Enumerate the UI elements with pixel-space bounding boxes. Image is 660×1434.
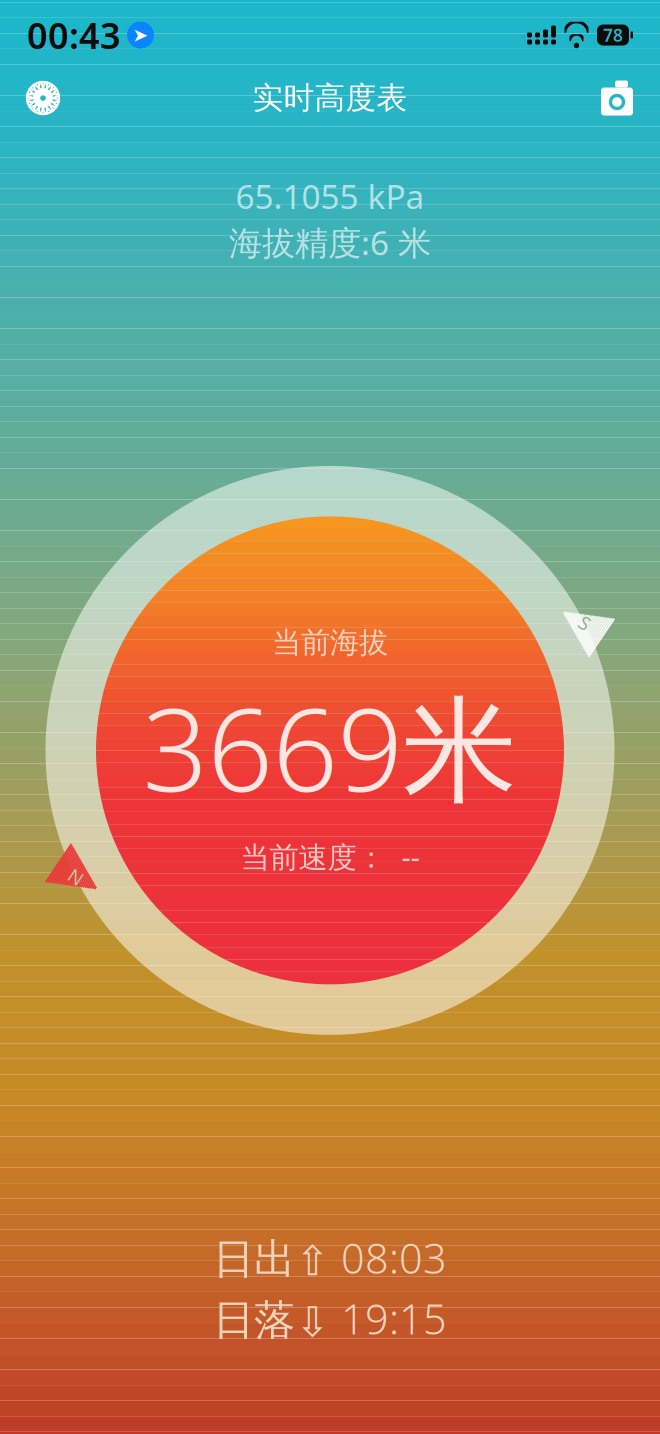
button[interactable]: 相机 — [590, 71, 644, 125]
staticText: N — [70, 860, 84, 885]
staticText: 00:43 — [27, 11, 121, 59]
staticText: 日落⇩ 19:15 — [213, 1291, 447, 1346]
button[interactable]: 设置 — [16, 71, 70, 125]
staticText: 65.1055 kPa — [235, 174, 424, 218]
staticText: 日出⇧ 08:03 — [213, 1230, 447, 1285]
staticText: 实时高度表 — [252, 79, 407, 117]
staticText: 78 — [603, 23, 623, 46]
staticText: 海拔精度:6 米 — [229, 220, 431, 265]
staticText: ➤ — [132, 24, 148, 46]
staticText: 当前海拔 — [272, 625, 388, 661]
staticText: 当前速度： -- — [240, 837, 419, 876]
staticText: S — [578, 610, 588, 635]
staticText: 3669米 — [142, 671, 517, 823]
